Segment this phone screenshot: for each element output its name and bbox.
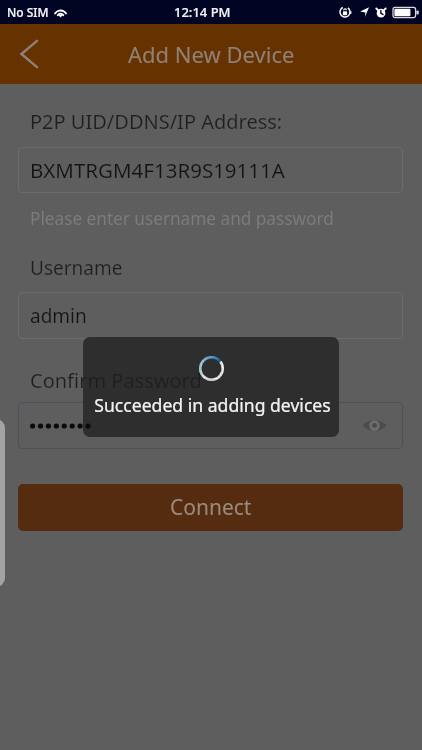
staticText: 12:14 PM — [174, 3, 231, 21]
button[interactable]: Back — [3, 28, 55, 80]
button[interactable]: Show password — [345, 403, 403, 448]
button[interactable]: Show password — [18, 402, 403, 449]
staticText: Please enter username and password — [30, 207, 334, 230]
button[interactable]: BXMTRGM4F13R9S19111A — [18, 147, 403, 193]
button[interactable]: admin — [18, 292, 403, 339]
staticText: P2P UID/DDNS/IP Address: — [30, 108, 283, 135]
staticText: BXMTRGM4F13R9S19111A — [30, 156, 285, 184]
staticText: Confirm Password — [30, 367, 202, 394]
staticText: admin — [30, 303, 87, 329]
button[interactable]: Connect — [18, 484, 403, 531]
staticText: Add New Device — [128, 39, 295, 69]
staticText: No SIM — [7, 4, 49, 20]
staticText: Username — [30, 255, 123, 281]
staticText: Connect — [170, 493, 252, 522]
staticText: Succeeded in adding devices — [94, 393, 331, 417]
